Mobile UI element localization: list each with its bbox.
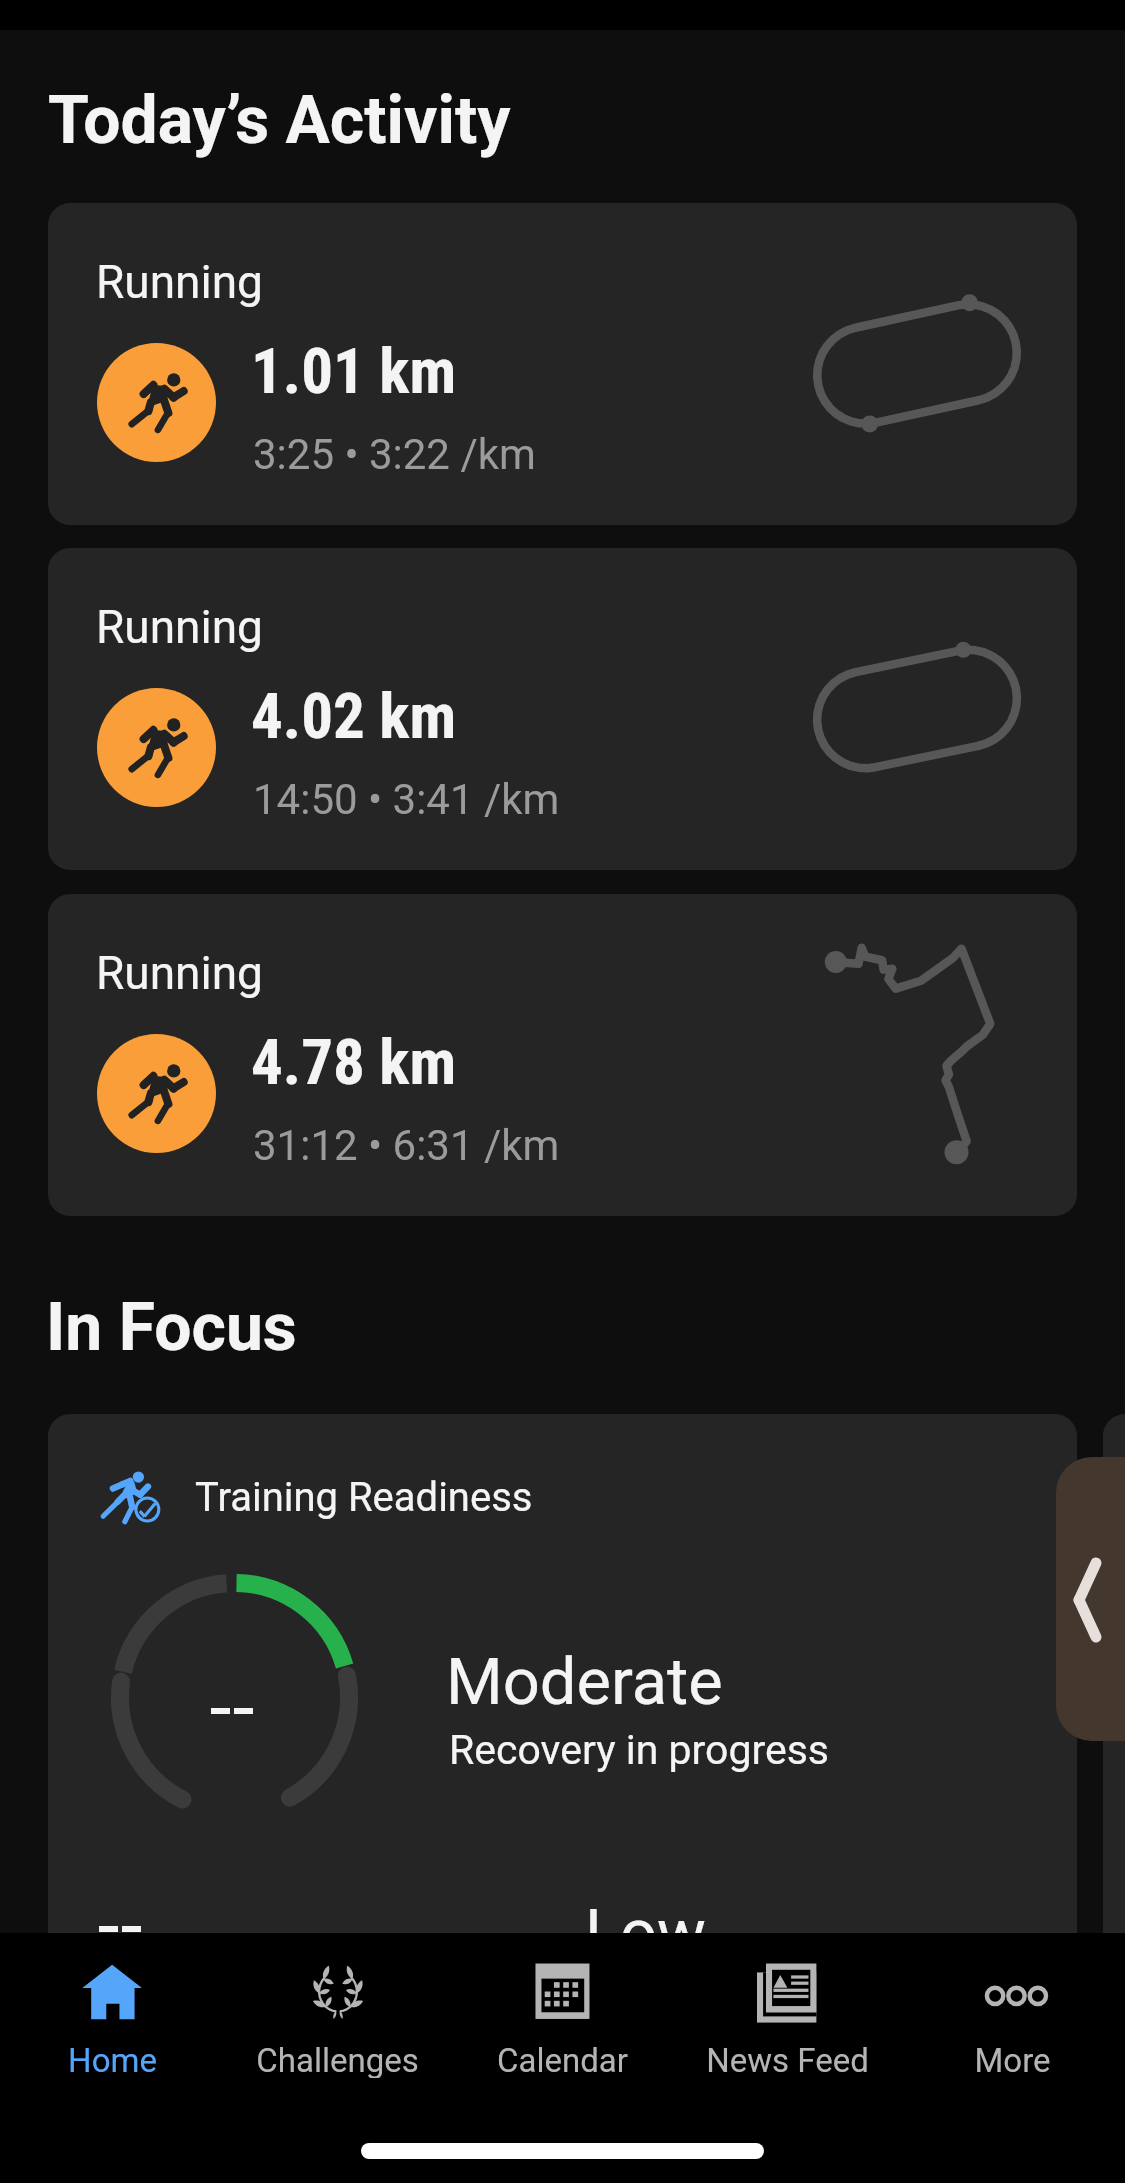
staticText: 31:12 • 6:31 /km: [253, 1121, 560, 1170]
staticText: 4.02 km: [251, 680, 457, 754]
staticText: Training Readiness: [195, 1474, 533, 1521]
staticText: Running: [96, 255, 263, 309]
button[interactable]: Challenges: [225, 1933, 450, 2078]
button[interactable]: Previous card: [1056, 1457, 1125, 1741]
staticText: Moderate: [446, 1644, 723, 1720]
button[interactable]: News Feed: [675, 1933, 900, 2078]
staticText: 3:25 • 3:22 /km: [253, 430, 536, 479]
staticText: 4.78 km: [251, 1026, 457, 1100]
button[interactable]: Training Readiness: [48, 1414, 1077, 1933]
staticText: Home: [68, 2041, 157, 2078]
staticText: Today’s Activity: [48, 82, 511, 159]
button[interactable]: Running: [48, 548, 1077, 870]
button[interactable]: Home: [0, 1933, 225, 2078]
staticText: News Feed: [706, 2041, 869, 2078]
button[interactable]: Running: [48, 894, 1077, 1216]
staticText: Calendar: [497, 2041, 628, 2078]
staticText: Running: [96, 600, 263, 654]
staticText: 1.01 km: [251, 335, 457, 409]
staticText: Challenges: [256, 2041, 419, 2078]
staticText: Recovery in progress: [449, 1726, 829, 1774]
staticText: Low: [585, 1895, 706, 1933]
button[interactable]: Calendar: [450, 1933, 675, 2078]
button[interactable]: Running: [48, 203, 1077, 525]
staticText: 14:50 • 3:41 /km: [253, 775, 560, 824]
staticText: Running: [96, 946, 263, 1000]
staticText: In Focus: [46, 1289, 297, 1366]
staticText: More: [974, 2041, 1051, 2078]
button[interactable]: More: [900, 1933, 1125, 2078]
